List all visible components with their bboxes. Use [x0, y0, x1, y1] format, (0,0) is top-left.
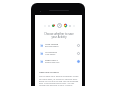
staticText: Choose whether to save your Activity	[36, 32, 82, 38]
staticText: Delete manually	[45, 61, 60, 64]
staticText: Recommended	[45, 45, 59, 48]
staticText: Auto-delete	[45, 42, 59, 45]
button[interactable]: Keep until I	[35, 57, 82, 65]
staticText: How long is right?	[39, 71, 59, 74]
button[interactable]: Auto-delete	[35, 41, 82, 49]
staticText: 18 months	[45, 50, 58, 53]
staticText: Auto-delete	[45, 53, 56, 56]
button[interactable]: 18 months	[35, 49, 82, 57]
staticText: We can keep your data to remember things…	[39, 75, 79, 86]
staticText: Keep until I	[45, 58, 58, 61]
